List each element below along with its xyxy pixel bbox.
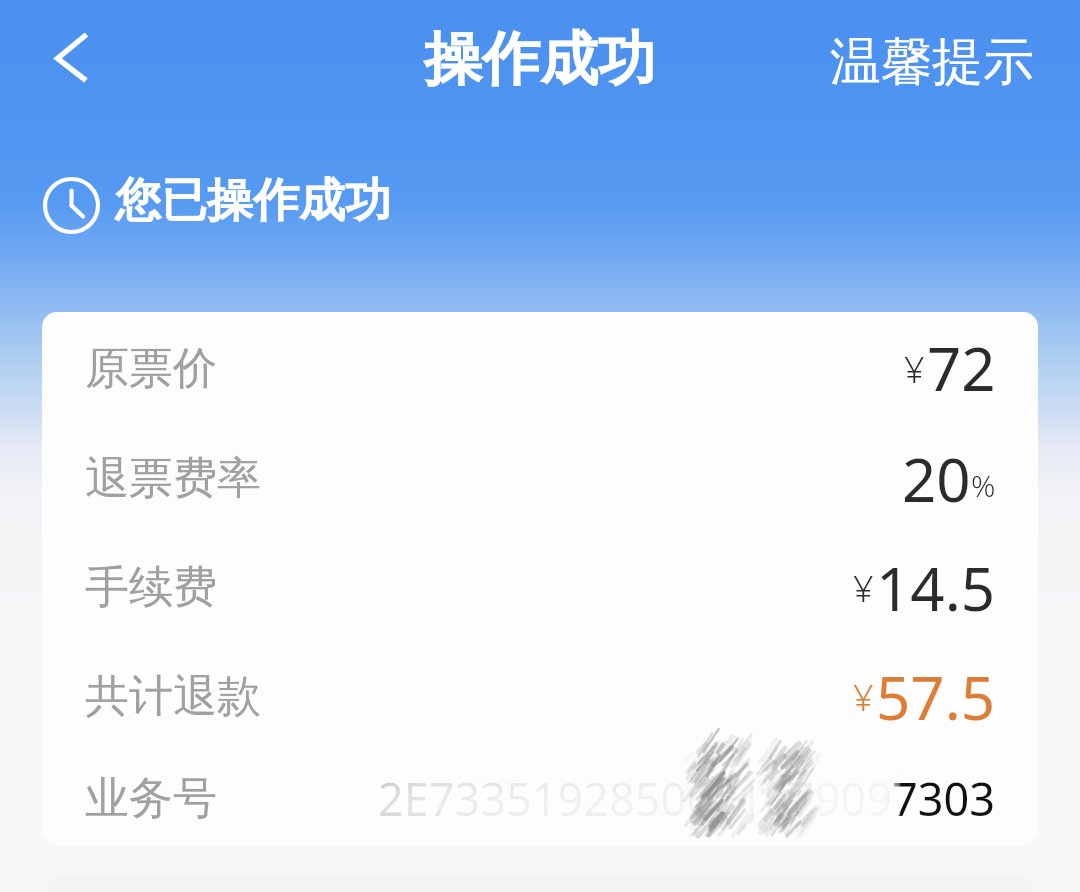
- button[interactable]: 原票价: [42, 312, 1038, 424]
- button[interactable]: 业务号: [42, 751, 1038, 845]
- staticText: 温馨提示: [830, 30, 1034, 94]
- staticText: ¥: [904, 345, 925, 394]
- staticText: 操作成功: [424, 23, 656, 96]
- staticText: 72: [927, 327, 996, 409]
- staticText: ¥: [853, 673, 874, 722]
- button[interactable]: 手续费: [42, 533, 1038, 642]
- button[interactable]: 共计退款: [42, 642, 1038, 751]
- staticText: 您已操作成功: [115, 172, 391, 230]
- button[interactable]: 退票费率: [42, 424, 1038, 533]
- staticText: 14.5: [876, 547, 996, 629]
- staticText: 共计退款: [85, 669, 261, 724]
- staticText: 手续费: [85, 560, 217, 615]
- staticText: %: [971, 465, 996, 506]
- staticText: ¥: [853, 564, 874, 613]
- staticText: 原票价: [85, 341, 217, 396]
- staticText: 退票费率: [85, 451, 261, 506]
- staticText: 57.5: [876, 656, 996, 738]
- staticText: 20: [902, 438, 971, 520]
- staticText: 业务号: [85, 771, 217, 826]
- button[interactable]: Back: [16, 16, 104, 104]
- staticText: 2E7335192850671079097303: [378, 768, 996, 829]
- button[interactable]: 温馨提示: [830, 30, 1034, 94]
